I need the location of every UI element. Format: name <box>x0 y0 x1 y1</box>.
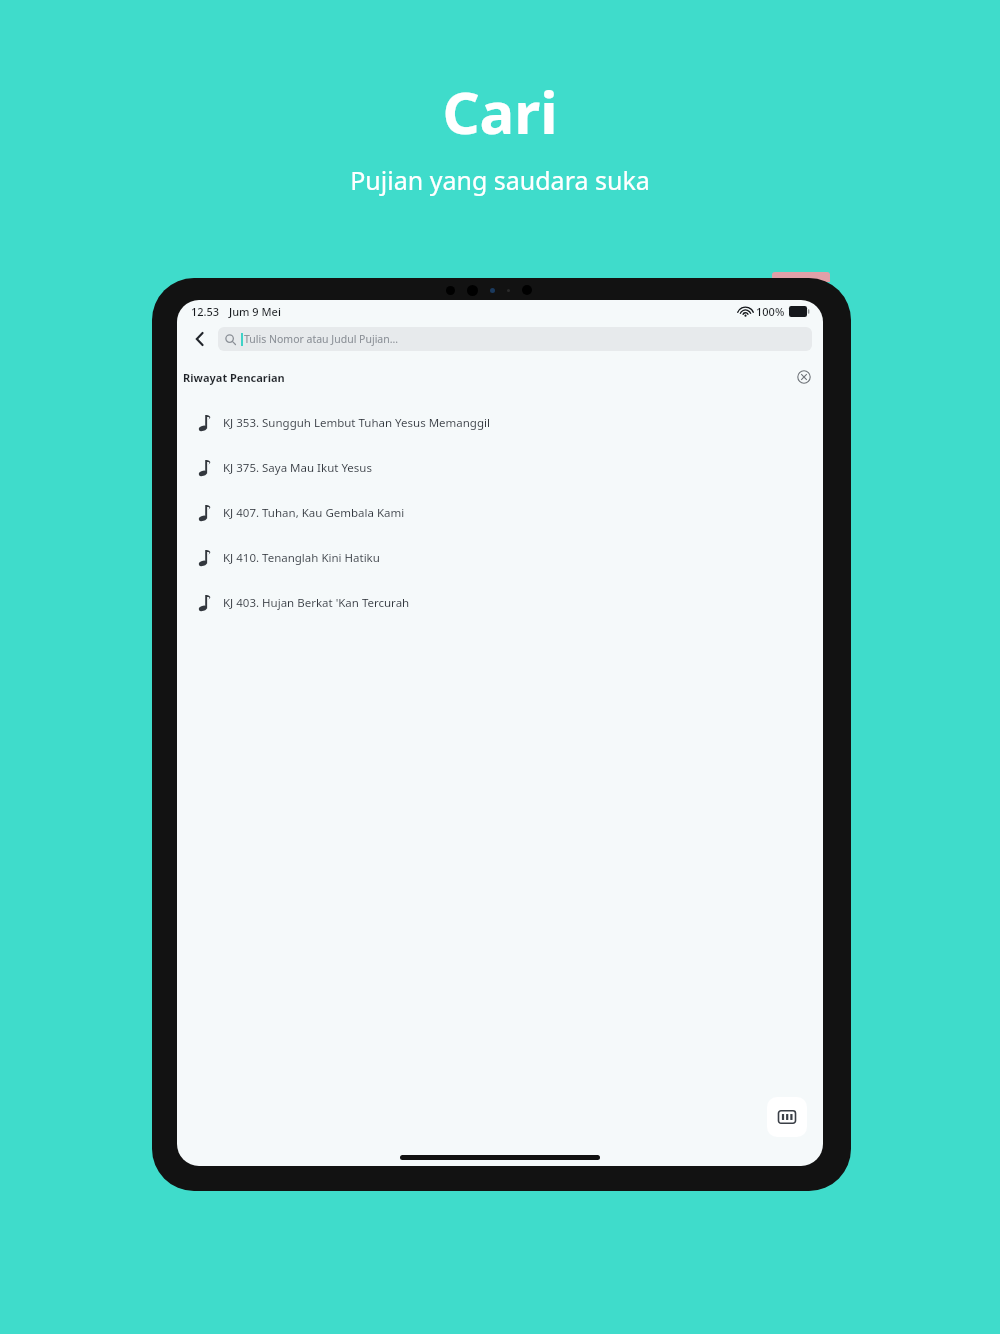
button[interactable]: Clear search history <box>793 366 815 388</box>
staticText: 100% <box>756 304 785 319</box>
button[interactable]: Hide keyboard <box>767 1097 807 1137</box>
button[interactable]: Back <box>185 324 215 354</box>
staticText: Riwayat Pencarian <box>183 370 285 385</box>
button[interactable]: KJ 375. Saya Mau Ikut Yesus <box>177 445 823 490</box>
button[interactable]: Tulis Nomor atau Judul Pujian... <box>218 327 812 351</box>
staticText: KJ 407. Tuhan, Kau Gembala Kami <box>223 505 405 521</box>
button[interactable]: KJ 410. Tenanglah Kini Hatiku <box>177 535 823 580</box>
staticText: KJ 353. Sungguh Lembut Tuhan Yesus Meman… <box>223 415 490 431</box>
staticText: Jum 9 Mei <box>229 304 281 319</box>
staticText: Tulis Nomor atau Judul Pujian... <box>244 332 399 346</box>
staticText: KJ 410. Tenanglah Kini Hatiku <box>223 550 380 566</box>
staticText: Pujian yang saudara suka <box>350 163 650 197</box>
button[interactable]: KJ 403. Hujan Berkat 'Kan Tercurah <box>177 580 823 625</box>
button[interactable]: KJ 353. Sungguh Lembut Tuhan Yesus Meman… <box>177 400 823 445</box>
button[interactable]: KJ 407. Tuhan, Kau Gembala Kami <box>177 490 823 535</box>
staticText: Cari <box>442 72 558 151</box>
staticText: KJ 375. Saya Mau Ikut Yesus <box>223 460 372 476</box>
staticText: 12.53 <box>191 304 220 319</box>
staticText: KJ 403. Hujan Berkat 'Kan Tercurah <box>223 595 410 611</box>
